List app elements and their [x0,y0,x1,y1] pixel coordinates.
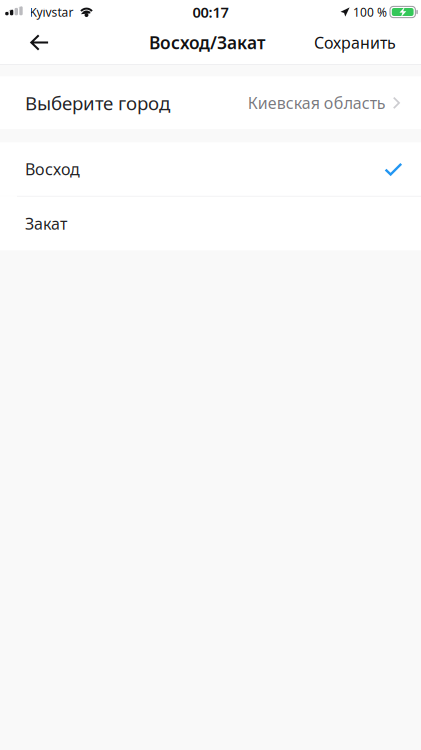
button[interactable]: Выберите город [0,76,421,129]
staticText: Kyivstar [29,4,73,20]
staticText: 00:17 [192,2,228,22]
button[interactable]: Сохранить [301,24,421,61]
staticText: Сохранить [314,32,396,53]
button[interactable]: Закат [0,197,421,250]
button[interactable]: Back [0,24,74,61]
staticText: Киевская область [248,92,386,113]
staticText: Закат [25,213,67,234]
staticText: Выберите город [25,90,170,115]
staticText: 100 % [353,4,387,20]
staticText: Восход [25,158,80,180]
button[interactable]: Восход [0,142,421,196]
staticText: Восход/Закат [149,31,265,54]
